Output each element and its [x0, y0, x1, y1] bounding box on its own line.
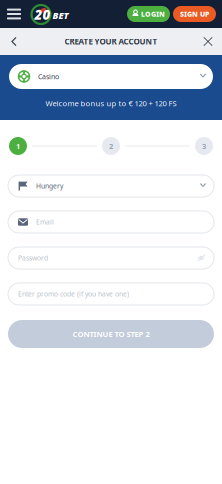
staticText: Casino	[38, 72, 59, 81]
staticText: Email	[36, 217, 54, 227]
staticText: SIGN UP	[180, 9, 209, 19]
staticText: LOGIN	[141, 9, 165, 19]
staticText: Welcome bonus up to € 120 + 120 FS	[45, 98, 176, 108]
staticText: CONTINUE TO STEP 2	[72, 329, 149, 339]
button[interactable]: Menu	[5, 4, 23, 24]
button[interactable]: Casino	[9, 64, 213, 89]
button[interactable]: Hungery	[8, 175, 214, 197]
staticText: 20	[34, 5, 50, 24]
staticText: 3	[202, 141, 206, 151]
staticText: 2	[109, 141, 113, 151]
staticText: Password	[18, 253, 48, 263]
staticText: 1	[16, 141, 20, 151]
staticText: BET	[52, 9, 68, 22]
button[interactable]: SIGN UP	[173, 6, 216, 22]
button[interactable]: Password	[8, 247, 214, 269]
button[interactable]: Back	[5, 30, 23, 52]
staticText: Hungery	[36, 181, 63, 191]
button[interactable]: Enter promo code (if you have one)	[8, 283, 214, 305]
button[interactable]: CONTINUE TO STEP 2	[8, 320, 214, 348]
button[interactable]: LOGIN	[127, 6, 170, 22]
staticText: CREATE YOUR ACCOUNT	[64, 36, 157, 47]
button[interactable]: Email	[8, 211, 214, 233]
button[interactable]: Close	[199, 30, 217, 52]
staticText: Enter promo code (if you have one)	[18, 289, 129, 299]
